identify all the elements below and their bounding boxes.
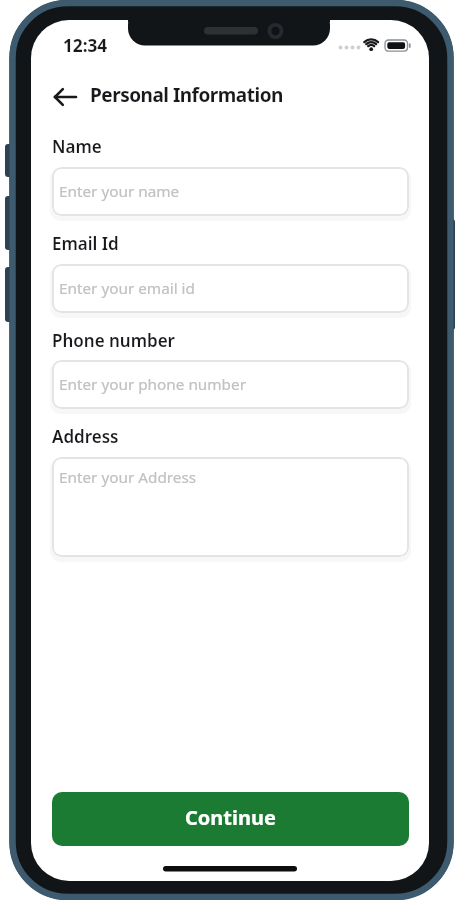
staticText: Continue [185,804,276,831]
button[interactable]: Enter your phone number [52,360,409,409]
staticText: Address [52,425,119,448]
staticText: Enter your phone number [59,374,246,395]
staticText: Name [52,135,102,158]
button[interactable]: Continue [52,792,409,846]
button[interactable] [48,82,78,112]
button[interactable]: Enter your email id [52,264,409,313]
staticText: Enter your Address [59,467,197,488]
button[interactable]: Enter your name [52,167,409,216]
staticText: Email Id [52,232,119,255]
staticText: Personal Information [90,82,283,108]
staticText: Enter your name [59,181,180,202]
staticText: Phone number [52,329,175,352]
staticText: 12:34 [63,34,108,57]
staticText: Enter your email id [59,278,195,299]
button[interactable]: Enter your Address [52,457,409,557]
